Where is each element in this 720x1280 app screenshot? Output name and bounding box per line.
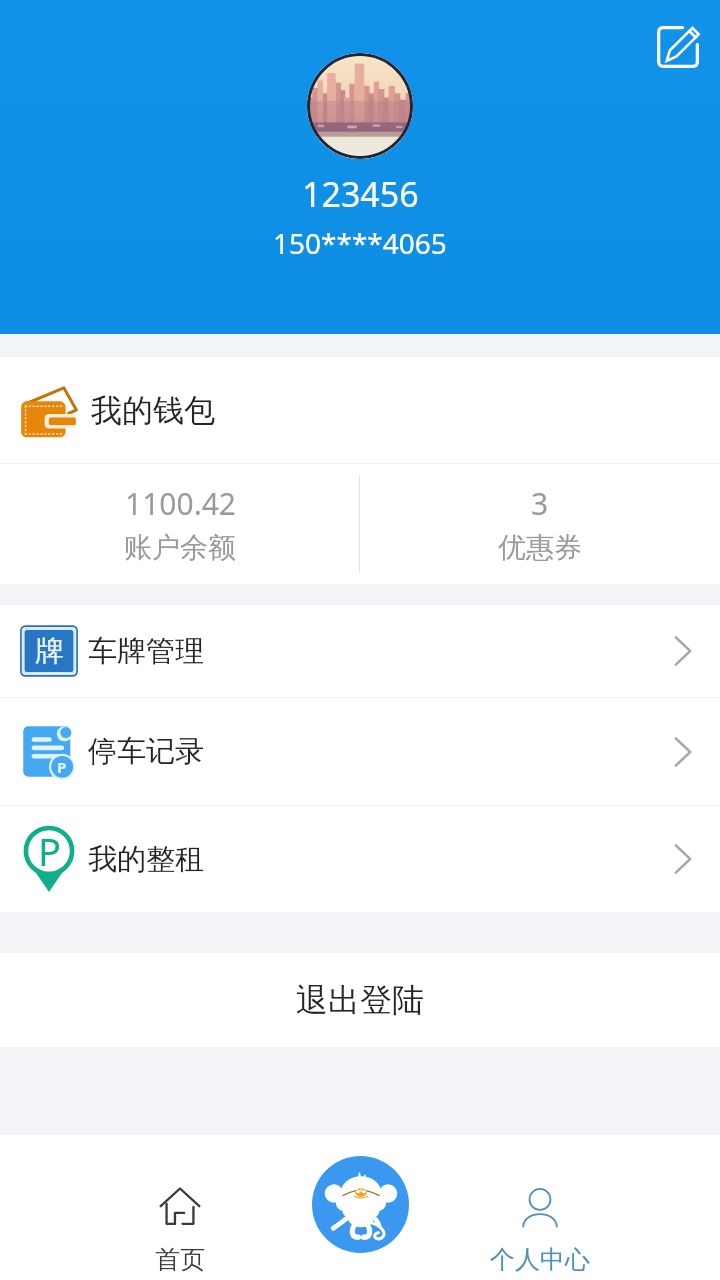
button[interactable]: P	[0, 806, 720, 912]
button[interactable]: 退出登陆	[0, 953, 720, 1047]
staticText: 牌	[35, 633, 64, 670]
staticText: P	[38, 825, 61, 877]
staticText: 个人中心	[490, 1244, 590, 1275]
button[interactable]: Avatar	[307, 53, 413, 159]
button[interactable]: 首页	[0, 1135, 360, 1280]
button[interactable]: 我的钱包	[0, 357, 720, 463]
button[interactable]: 牌	[0, 605, 720, 697]
staticText: 优惠券	[498, 530, 582, 565]
staticText: 1100.42	[125, 483, 236, 524]
staticText: P	[57, 757, 67, 777]
staticText: 我的整租	[88, 841, 204, 878]
button[interactable]: Edit profile	[647, 16, 709, 78]
staticText: 车牌管理	[88, 633, 204, 670]
staticText: 3	[531, 483, 549, 524]
staticText: 123456	[302, 171, 419, 217]
button[interactable]: 3	[360, 464, 720, 584]
button[interactable]: P	[0, 698, 720, 805]
staticText: 账户余额	[124, 530, 236, 565]
button[interactable]: Scan	[312, 1156, 409, 1253]
staticText: 退出登陆	[296, 980, 424, 1020]
button[interactable]: 个人中心	[360, 1135, 720, 1280]
staticText: 我的钱包	[91, 391, 215, 430]
button[interactable]: 1100.42	[0, 464, 359, 584]
staticText: 150****4065	[273, 224, 447, 262]
staticText: 停车记录	[88, 733, 204, 770]
staticText: 首页	[155, 1244, 205, 1275]
